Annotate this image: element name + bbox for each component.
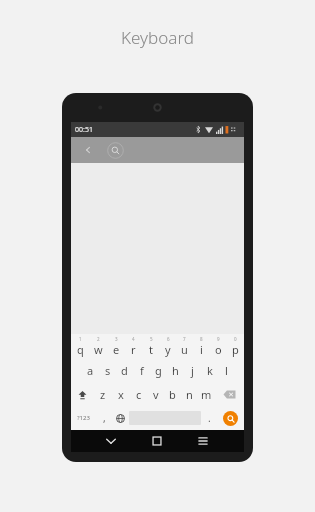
staticText: 9 [217, 336, 220, 342]
staticText: m [201, 387, 212, 402]
staticText: o [215, 342, 222, 357]
button[interactable]: Search [107, 142, 124, 159]
button[interactable]: Home [148, 432, 166, 450]
button[interactable]: Shift [71, 382, 94, 406]
button[interactable]: v [147, 382, 164, 406]
staticText: , [103, 411, 106, 425]
staticText: n [186, 387, 193, 402]
button[interactable]: , [96, 406, 112, 430]
staticText: z [100, 387, 106, 402]
staticText: ?123 [77, 414, 90, 422]
staticText: 7 [183, 336, 186, 342]
staticText: 5 [150, 336, 153, 342]
button[interactable]: b [164, 382, 181, 406]
staticText: v [153, 387, 159, 402]
button[interactable]: . [201, 406, 217, 430]
button[interactable]: z [94, 382, 112, 406]
staticText: g [155, 363, 162, 378]
staticText: r [131, 342, 136, 357]
staticText: f [140, 363, 144, 378]
staticText: k [207, 363, 213, 378]
button[interactable]: Back [102, 432, 120, 450]
staticText: 1 [79, 336, 82, 342]
button[interactable]: 7 [176, 334, 193, 358]
staticText: s [105, 363, 111, 378]
staticText: i [200, 342, 203, 357]
staticText: a [87, 363, 94, 378]
button[interactable]: j [184, 358, 201, 382]
button[interactable]: Backspace [215, 382, 244, 406]
button[interactable]: 2 [89, 334, 107, 358]
staticText: y [165, 342, 171, 357]
button[interactable]: l [218, 358, 235, 382]
button[interactable]: n [181, 382, 198, 406]
button[interactable]: 0 [227, 334, 244, 358]
button[interactable]: d [116, 358, 133, 382]
button[interactable]: 8 [193, 334, 210, 358]
button[interactable]: 1 [71, 334, 89, 358]
button[interactable]: k [201, 358, 218, 382]
button[interactable]: ?123 [71, 406, 96, 430]
button[interactable]: Search [223, 411, 238, 426]
button[interactable]: Back [80, 142, 96, 158]
staticText: b [169, 387, 176, 402]
staticText: w [94, 342, 103, 357]
staticText: 3 [115, 336, 118, 342]
staticText: p [232, 342, 239, 357]
staticText: u [181, 342, 188, 357]
staticText: 00:51 [75, 125, 93, 135]
button[interactable]: 6 [159, 334, 176, 358]
staticText: j [191, 363, 194, 378]
button[interactable]: 4 [125, 334, 142, 358]
button[interactable]: s [99, 358, 116, 382]
staticText: e [113, 342, 120, 357]
button[interactable]: 3 [107, 334, 125, 358]
staticText: h [172, 363, 179, 378]
staticText: d [121, 363, 128, 378]
button[interactable]: a [81, 358, 99, 382]
button[interactable]: 9 [210, 334, 227, 358]
staticText: . [208, 411, 211, 425]
button[interactable]: Change language [112, 406, 129, 430]
staticText: x [118, 387, 124, 402]
button[interactable]: x [112, 382, 130, 406]
button[interactable]: Recent apps [194, 432, 212, 450]
button[interactable]: f [133, 358, 150, 382]
button[interactable]: g [150, 358, 167, 382]
staticText: Keyboard [121, 26, 194, 49]
staticText: l [225, 363, 228, 378]
staticText: 0 [234, 336, 237, 342]
button[interactable]: 5 [142, 334, 159, 358]
staticText: t [149, 342, 153, 357]
staticText: c [136, 387, 142, 402]
button[interactable]: h [167, 358, 184, 382]
button[interactable]: m [198, 382, 215, 406]
button[interactable]: c [130, 382, 147, 406]
staticText: 8 [200, 336, 203, 342]
staticText: 2 [97, 336, 100, 342]
staticText: 4 [132, 336, 135, 342]
staticText: 6 [167, 336, 170, 342]
staticText: q [77, 342, 84, 357]
